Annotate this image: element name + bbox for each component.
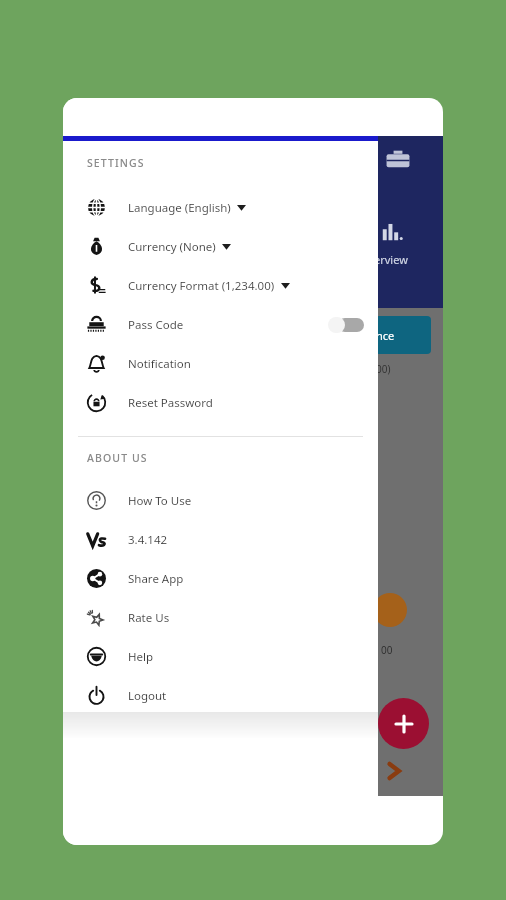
staticText: 3.4.142: [128, 532, 168, 548]
button[interactable]: How To Use: [63, 481, 378, 520]
staticText: Reset Password: [128, 395, 213, 411]
button[interactable]: Logout: [63, 676, 378, 715]
staticText: SETTINGS: [87, 156, 145, 170]
button[interactable]: Help: [63, 637, 378, 676]
button[interactable]: Currency Format (1,234.00): [63, 266, 378, 305]
staticText: ABOUT US: [87, 451, 148, 465]
button[interactable]: Wallet: [385, 146, 411, 172]
button[interactable]: Rate Us: [63, 598, 378, 637]
staticText: How To Use: [128, 493, 192, 509]
staticText: Currency (None): [128, 239, 216, 255]
button[interactable]: nce: [375, 316, 431, 354]
staticText: Currency Format (1,234.00): [128, 278, 275, 294]
staticText: Rate Us: [128, 610, 170, 626]
button[interactable]: 3.4.142: [63, 520, 378, 559]
staticText: Help: [128, 649, 154, 665]
staticText: nce: [376, 328, 395, 343]
button[interactable]: Next: [383, 760, 405, 782]
button[interactable]: [328, 317, 364, 333]
button[interactable]: Notification: [63, 344, 378, 383]
staticText: Logout: [128, 688, 167, 704]
button[interactable]: Add: [378, 698, 429, 749]
button[interactable]: Language (English): [63, 188, 378, 227]
staticText: 00): [376, 362, 391, 376]
staticText: 00: [381, 643, 393, 657]
button[interactable]: Reset Password: [63, 383, 378, 422]
button[interactable]: Pass Code: [63, 305, 378, 344]
staticText: Share App: [128, 571, 184, 587]
staticText: erview: [374, 252, 408, 267]
staticText: Notification: [128, 356, 191, 372]
button[interactable]: Share App: [63, 559, 378, 598]
staticText: Language (English): [128, 200, 231, 216]
button[interactable]: Currency (None): [63, 227, 378, 266]
staticText: Pass Code: [128, 317, 184, 333]
